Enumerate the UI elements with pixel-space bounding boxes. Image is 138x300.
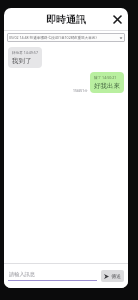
staticText: 傳送: [111, 273, 121, 279]
staticText: 請輸入訊息: [9, 271, 35, 278]
staticText: 陳丁 14:50:21: [94, 75, 117, 80]
staticText: 即時通訊: [46, 13, 86, 26]
button[interactable]: 陳丁 14:50:21: [90, 72, 124, 93]
button[interactable]: 林怡君 14:49:57: [8, 47, 42, 68]
staticText: 05/02 14:48 投遞車國路七段401巷1028號(重屁大車房): [9, 35, 118, 40]
staticText: 我到了: [12, 57, 32, 65]
staticText: 15時51分: [73, 88, 88, 93]
button[interactable]: 請輸入訊息: [8, 271, 97, 281]
staticText: 林怡君 14:49:57: [12, 50, 38, 55]
button[interactable]: 傳送: [101, 270, 124, 282]
button[interactable]: 05/02 14:48 投遞車國路七段401巷1028號(重屁大車房): [7, 33, 125, 42]
staticText: 好我出來: [94, 82, 120, 90]
button[interactable]: Close: [108, 10, 126, 28]
